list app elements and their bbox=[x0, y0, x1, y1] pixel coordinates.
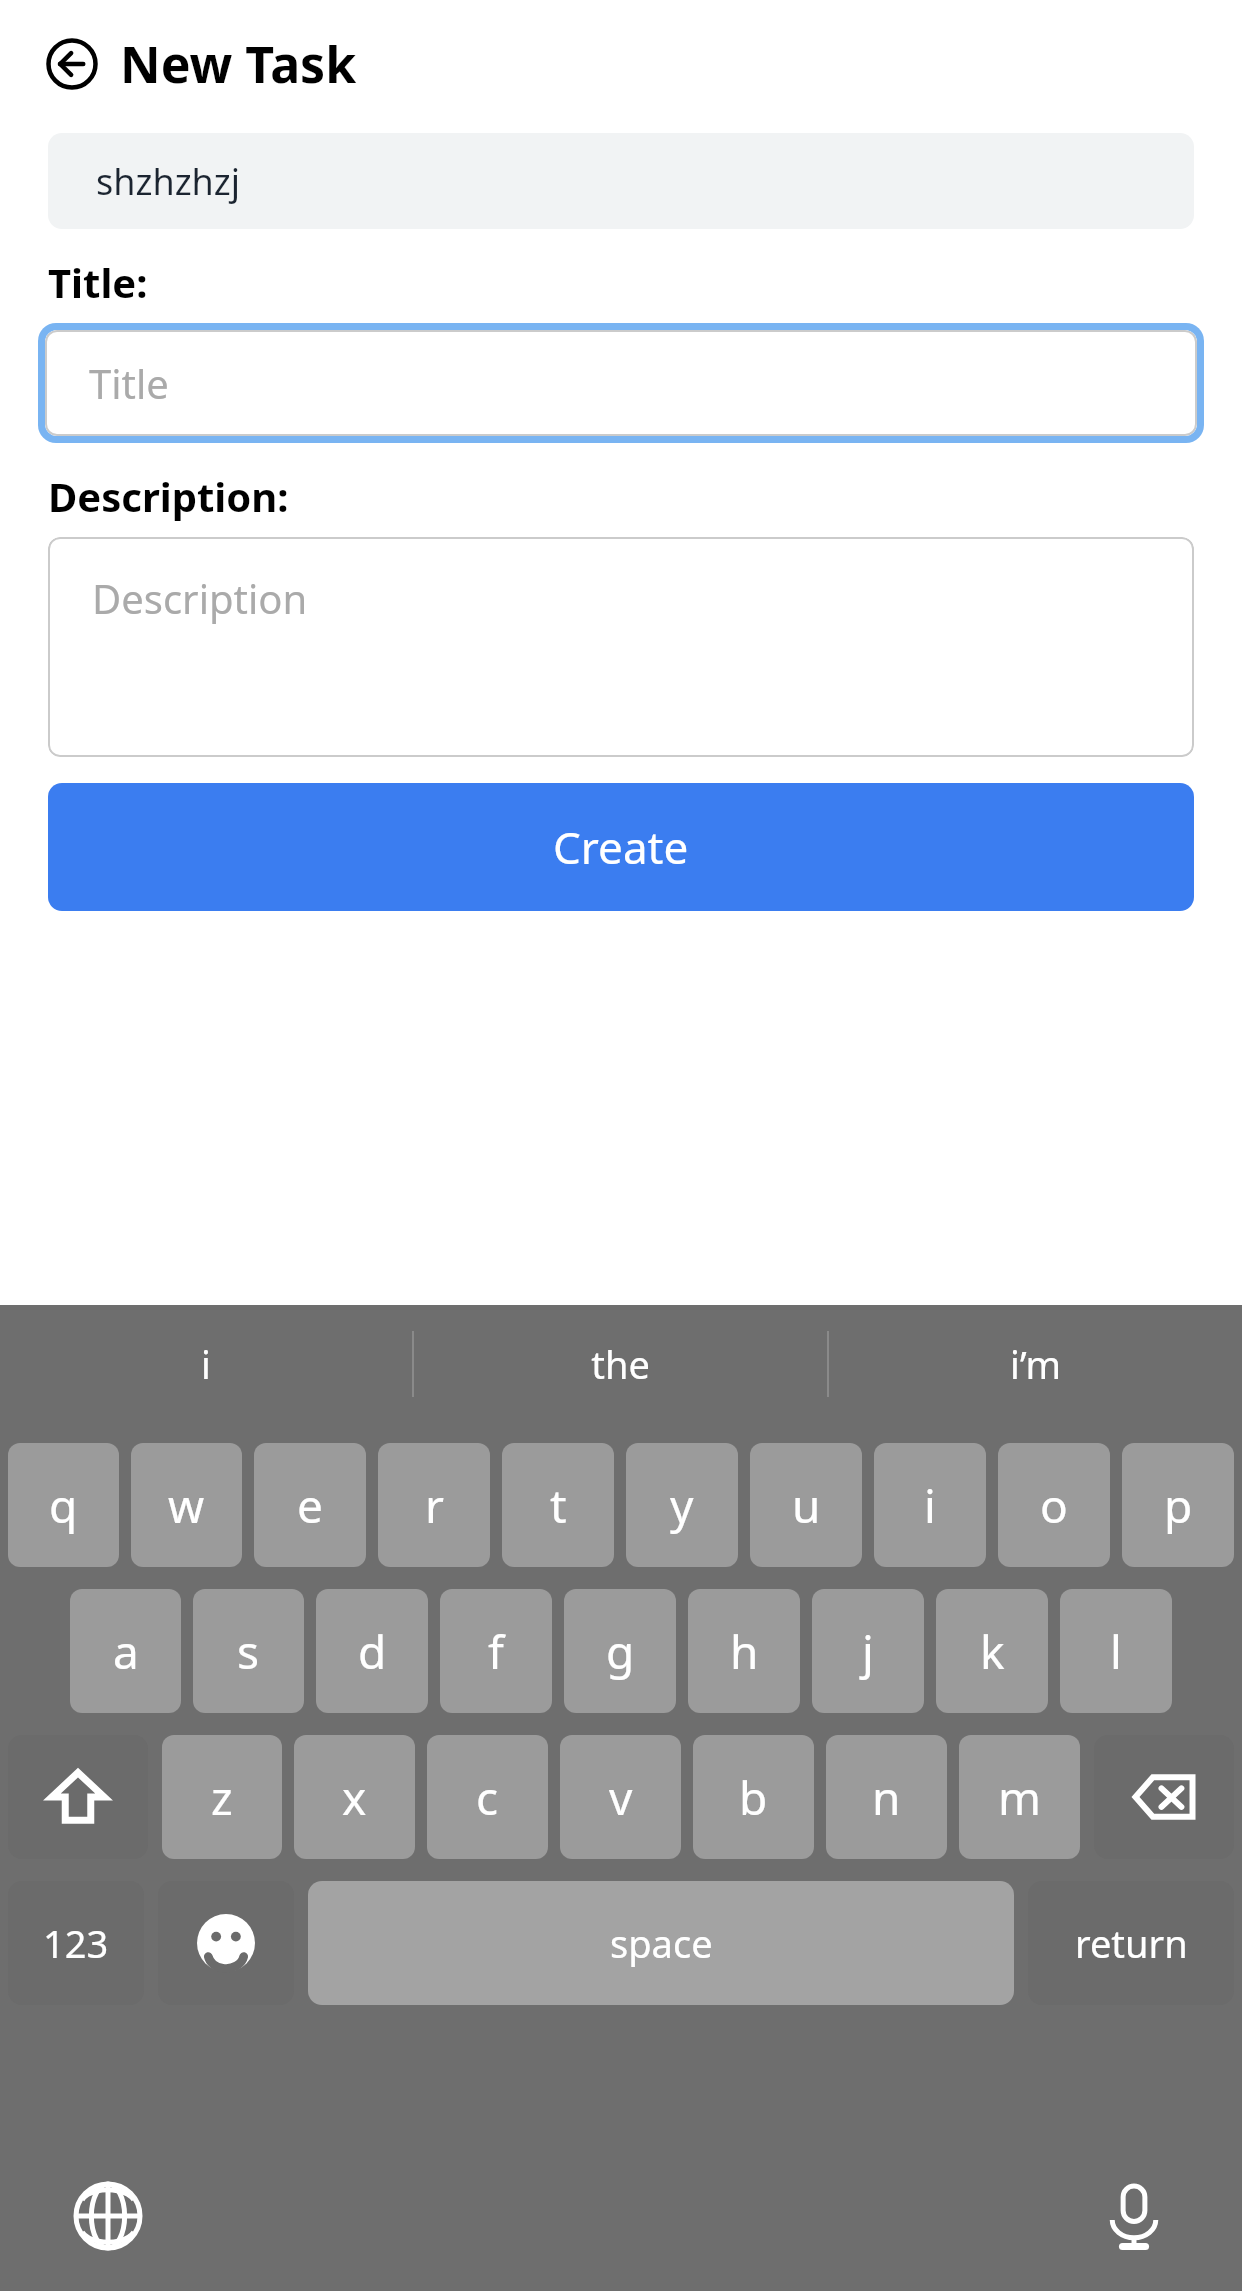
button[interactable]: Backspace bbox=[1094, 1735, 1234, 1859]
staticText: e bbox=[297, 1474, 323, 1537]
staticText: n bbox=[872, 1766, 901, 1829]
button[interactable]: Shift bbox=[8, 1735, 148, 1859]
button[interactable]: s bbox=[193, 1589, 304, 1713]
staticText: g bbox=[606, 1620, 635, 1683]
staticText: the bbox=[591, 1338, 650, 1390]
staticText: v bbox=[609, 1766, 633, 1829]
staticText: l bbox=[1110, 1620, 1122, 1683]
staticText: space bbox=[610, 1917, 713, 1969]
button[interactable]: j bbox=[812, 1589, 924, 1713]
staticText: i bbox=[201, 1338, 211, 1390]
button[interactable]: a bbox=[70, 1589, 181, 1713]
staticText: 123 bbox=[43, 1917, 109, 1969]
staticText: New Task bbox=[120, 30, 357, 98]
button[interactable]: c bbox=[427, 1735, 548, 1859]
button[interactable]: Create bbox=[48, 783, 1194, 911]
staticText: o bbox=[1040, 1474, 1068, 1537]
staticText: return bbox=[1075, 1917, 1188, 1969]
button[interactable]: r bbox=[378, 1443, 490, 1567]
button[interactable]: u bbox=[750, 1443, 862, 1567]
button[interactable]: w bbox=[131, 1443, 242, 1567]
staticText: Description bbox=[92, 571, 308, 625]
button[interactable]: Title bbox=[45, 330, 1197, 436]
button[interactable]: d bbox=[316, 1589, 428, 1713]
staticText: Create bbox=[553, 817, 689, 877]
staticText: m bbox=[998, 1766, 1042, 1829]
staticText: d bbox=[358, 1620, 387, 1683]
button[interactable]: n bbox=[826, 1735, 947, 1859]
staticText: a bbox=[113, 1620, 139, 1683]
button[interactable]: i bbox=[874, 1443, 986, 1567]
button[interactable]: h bbox=[688, 1589, 800, 1713]
staticText: i bbox=[924, 1474, 936, 1537]
button[interactable]: Back bbox=[44, 36, 100, 92]
button[interactable]: the bbox=[414, 1305, 827, 1423]
staticText: Description: bbox=[48, 469, 289, 523]
button[interactable]: q bbox=[8, 1443, 119, 1567]
staticText: u bbox=[792, 1474, 821, 1537]
button[interactable]: m bbox=[959, 1735, 1080, 1859]
button[interactable]: g bbox=[564, 1589, 676, 1713]
staticText: r bbox=[425, 1474, 444, 1537]
button[interactable]: return bbox=[1028, 1881, 1234, 2005]
button[interactable]: i bbox=[0, 1305, 412, 1423]
button[interactable]: y bbox=[626, 1443, 738, 1567]
button[interactable]: o bbox=[998, 1443, 1110, 1567]
button[interactable]: z bbox=[162, 1735, 282, 1859]
button[interactable]: 123 bbox=[8, 1881, 144, 2005]
staticText: s bbox=[237, 1620, 260, 1683]
staticText: p bbox=[1164, 1474, 1193, 1537]
staticText: z bbox=[211, 1766, 233, 1829]
staticText: Title: bbox=[48, 255, 148, 309]
button[interactable]: Voice input bbox=[1086, 2168, 1182, 2264]
button[interactable]: b bbox=[693, 1735, 814, 1859]
button[interactable]: v bbox=[560, 1735, 681, 1859]
staticText: j bbox=[862, 1620, 874, 1683]
staticText: b bbox=[739, 1766, 768, 1829]
button[interactable]: e bbox=[254, 1443, 366, 1567]
button[interactable]: k bbox=[936, 1589, 1048, 1713]
button[interactable]: space bbox=[308, 1881, 1014, 2005]
staticText: y bbox=[670, 1474, 694, 1537]
button[interactable]: p bbox=[1122, 1443, 1234, 1567]
staticText: k bbox=[980, 1620, 1005, 1683]
button[interactable]: Description bbox=[48, 537, 1194, 757]
staticText: q bbox=[49, 1474, 78, 1537]
button[interactable]: Emoji bbox=[158, 1881, 294, 2005]
button[interactable]: t bbox=[502, 1443, 614, 1567]
button[interactable]: f bbox=[440, 1589, 552, 1713]
button[interactable]: Change keyboard language bbox=[60, 2168, 156, 2264]
staticText: shzhzhzj bbox=[96, 157, 241, 206]
staticText: Title bbox=[89, 356, 169, 410]
staticText: f bbox=[488, 1620, 504, 1683]
staticText: c bbox=[476, 1766, 499, 1829]
staticText: t bbox=[550, 1474, 567, 1537]
staticText: w bbox=[168, 1474, 205, 1537]
staticText: x bbox=[342, 1766, 367, 1829]
staticText: i’m bbox=[1010, 1338, 1061, 1390]
staticText: h bbox=[730, 1620, 759, 1683]
button[interactable]: x bbox=[294, 1735, 415, 1859]
button[interactable]: i’m bbox=[829, 1305, 1242, 1423]
button[interactable]: l bbox=[1060, 1589, 1172, 1713]
button[interactable]: shzhzhzj bbox=[48, 133, 1194, 229]
